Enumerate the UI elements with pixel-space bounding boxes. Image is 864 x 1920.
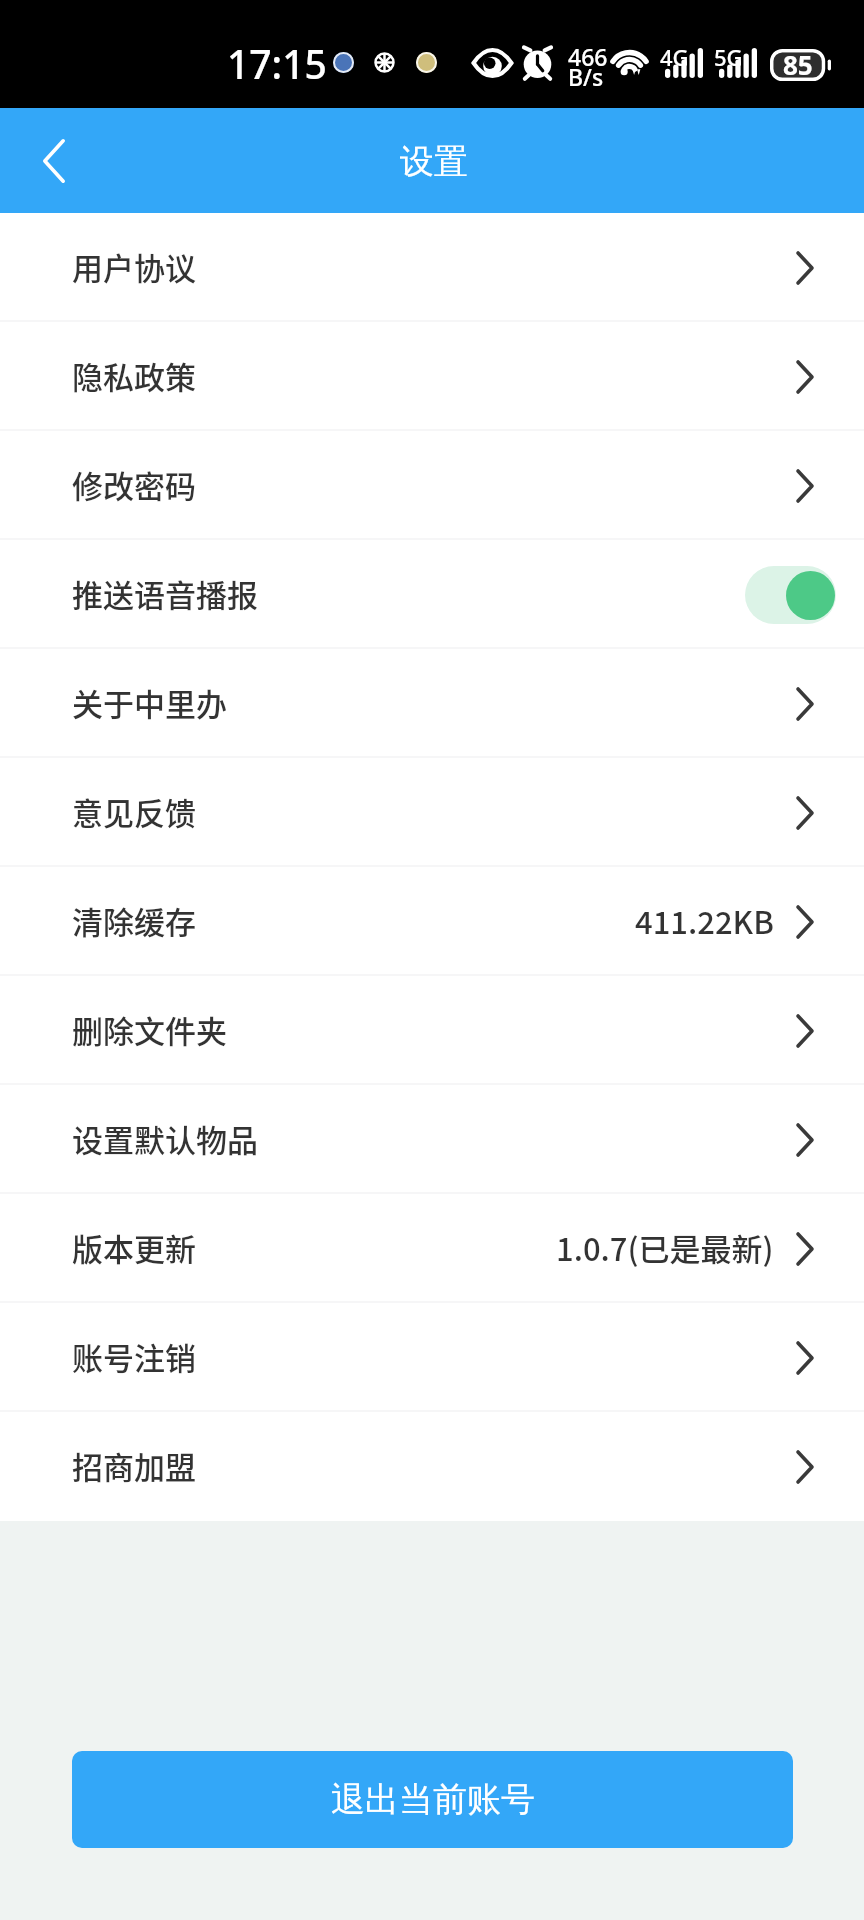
staticText: 版本更新 bbox=[72, 1225, 196, 1270]
button[interactable]: Back bbox=[24, 131, 84, 191]
button[interactable]: 设置默认物品 bbox=[0, 1085, 864, 1194]
staticText: 411.22KB bbox=[635, 898, 774, 943]
button[interactable]: 版本更新 bbox=[0, 1194, 864, 1303]
staticText: 关于中里办 bbox=[72, 680, 227, 725]
staticText: 意见反馈 bbox=[72, 789, 196, 834]
button[interactable]: 用户协议 bbox=[0, 213, 864, 322]
button[interactable]: 清除缓存 bbox=[0, 867, 864, 976]
staticText: 推送语音播报 bbox=[72, 571, 258, 616]
staticText: 账号注销 bbox=[72, 1334, 196, 1379]
staticText: 用户协议 bbox=[72, 244, 196, 289]
staticText: 85 bbox=[783, 47, 813, 82]
staticText: 隐私政策 bbox=[72, 353, 196, 398]
staticText: 设置 bbox=[400, 140, 468, 183]
button[interactable]: 退出当前账号 bbox=[72, 1751, 793, 1848]
button[interactable]: 推送语音播报 switch bbox=[745, 566, 836, 624]
staticText: 删除文件夹 bbox=[72, 1007, 227, 1052]
button[interactable]: 意见反馈 bbox=[0, 758, 864, 867]
staticText: 1.0.7(已是最新) bbox=[556, 1225, 774, 1270]
staticText: B/s bbox=[568, 61, 604, 92]
button[interactable]: 招商加盟 bbox=[0, 1412, 864, 1521]
staticText: 清除缓存 bbox=[72, 898, 196, 943]
button[interactable]: 关于中里办 bbox=[0, 649, 864, 758]
staticText: 17:15 bbox=[227, 37, 327, 90]
staticText: 5G bbox=[714, 42, 743, 72]
button[interactable]: 修改密码 bbox=[0, 431, 864, 540]
staticText: 设置默认物品 bbox=[72, 1116, 258, 1161]
staticText: 退出当前账号 bbox=[331, 1778, 535, 1821]
staticText: 招商加盟 bbox=[72, 1443, 196, 1488]
button[interactable]: 账号注销 bbox=[0, 1303, 864, 1412]
staticText: 4G bbox=[660, 42, 689, 72]
button[interactable]: 删除文件夹 bbox=[0, 976, 864, 1085]
button[interactable]: 推送语音播报 bbox=[0, 540, 864, 649]
staticText: 修改密码 bbox=[72, 462, 196, 507]
button[interactable]: 隐私政策 bbox=[0, 322, 864, 431]
staticText: 466 bbox=[568, 41, 608, 72]
